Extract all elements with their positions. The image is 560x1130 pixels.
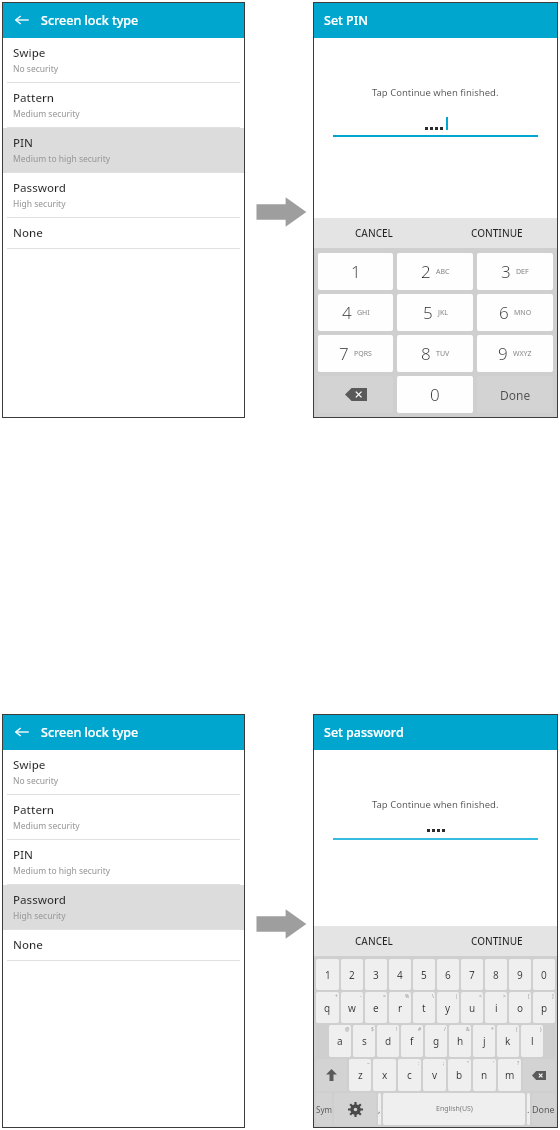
button[interactable]: e	[365, 992, 387, 1023]
staticText: 7	[339, 342, 349, 365]
staticText: GHI	[357, 308, 370, 318]
button[interactable]: y	[437, 992, 459, 1023]
button[interactable]: a	[329, 1025, 351, 1057]
button[interactable]: q	[316, 992, 339, 1023]
staticText: 6	[499, 301, 509, 324]
button[interactable]: CONTINUE	[435, 926, 558, 956]
button[interactable]: Back	[11, 721, 33, 743]
button[interactable]: m	[498, 1059, 521, 1091]
button[interactable]: CONTINUE	[435, 218, 558, 248]
button[interactable]: j	[473, 1025, 495, 1057]
button[interactable]: Pattern	[2, 83, 245, 128]
button[interactable]: 8	[485, 959, 507, 990]
button[interactable]: 6	[477, 294, 553, 331]
button[interactable]: c	[398, 1059, 421, 1091]
button[interactable]: b	[448, 1059, 471, 1091]
button[interactable]: Delete	[318, 376, 393, 413]
button[interactable]: s	[353, 1025, 375, 1057]
button[interactable]: 4	[389, 959, 411, 990]
button[interactable]: x	[373, 1059, 396, 1091]
button[interactable]: z	[349, 1059, 371, 1091]
staticText: %	[405, 993, 410, 1000]
button[interactable]: f	[401, 1025, 423, 1057]
button[interactable]: u	[461, 992, 483, 1023]
button[interactable]: t	[413, 992, 435, 1023]
button[interactable]: 7	[461, 959, 483, 990]
button[interactable]: 0	[397, 376, 473, 413]
staticText: !	[396, 1026, 398, 1033]
button[interactable]: Done	[477, 376, 553, 413]
staticText: 8	[421, 342, 431, 365]
button[interactable]: None	[2, 218, 245, 249]
button[interactable]: r	[389, 992, 411, 1023]
staticText: m	[505, 1068, 515, 1082]
staticText: 7	[469, 968, 475, 982]
button[interactable]: Password	[2, 885, 245, 930]
staticText: +	[335, 993, 338, 1000]
button[interactable]: Shift	[316, 1059, 347, 1091]
staticText: )	[540, 1026, 542, 1033]
button[interactable]: .	[527, 1093, 530, 1125]
button[interactable]: 2	[341, 959, 363, 990]
button[interactable]: o	[509, 992, 531, 1023]
button[interactable]: English(US)	[383, 1093, 525, 1125]
button[interactable]: d	[377, 1025, 399, 1057]
button[interactable]: Swipe	[2, 38, 245, 83]
staticText: g	[433, 1034, 440, 1048]
button[interactable]: 9	[509, 959, 531, 990]
staticText: .	[527, 1103, 530, 1115]
staticText: Set password	[324, 724, 404, 741]
button[interactable]: l	[521, 1025, 543, 1057]
staticText: 1	[351, 260, 361, 283]
button[interactable]: Pattern	[2, 795, 245, 840]
button[interactable]: 1	[318, 253, 393, 290]
staticText: Pattern	[13, 802, 55, 818]
button[interactable]: 3	[365, 959, 387, 990]
staticText: $	[371, 1026, 374, 1033]
button[interactable]: p	[533, 992, 555, 1023]
button[interactable]: Done	[532, 1093, 555, 1125]
button[interactable]: 7	[318, 335, 393, 372]
staticText: CANCEL	[355, 934, 393, 948]
button[interactable]: None	[2, 930, 245, 961]
button[interactable]: 3	[477, 253, 553, 290]
staticText: @	[345, 1026, 350, 1033]
staticText: Tap Continue when finished.	[372, 798, 499, 811]
button[interactable]: Delete	[523, 1059, 555, 1091]
staticText: x	[382, 1068, 388, 1082]
staticText: 9	[498, 342, 508, 365]
button[interactable]: 8	[397, 335, 473, 372]
button[interactable]: Sym	[316, 1093, 332, 1125]
button[interactable]: 6	[437, 959, 459, 990]
button[interactable]: k	[497, 1025, 519, 1057]
button[interactable]: 2	[397, 253, 473, 290]
button[interactable]: 1	[316, 959, 339, 990]
button[interactable]: PIN	[2, 840, 245, 885]
button[interactable]: 5	[397, 294, 473, 331]
button[interactable]: w	[341, 992, 363, 1023]
button[interactable]: i	[485, 992, 507, 1023]
button[interactable]: ,	[378, 1093, 381, 1125]
button[interactable]: CANCEL	[313, 926, 435, 956]
button[interactable]: Back	[11, 9, 33, 31]
button[interactable]: Password	[2, 173, 245, 218]
button[interactable]: 4	[318, 294, 393, 331]
button[interactable]: h	[449, 1025, 471, 1057]
button[interactable]: Swipe	[2, 750, 245, 795]
staticText: t	[422, 1001, 426, 1015]
staticText: ABC	[436, 267, 450, 277]
button[interactable]: 5	[413, 959, 435, 990]
staticText: High security	[13, 910, 66, 922]
button[interactable]: g	[425, 1025, 447, 1057]
button[interactable]: 9	[477, 335, 553, 372]
button[interactable]: Settings	[334, 1093, 376, 1125]
button[interactable]: 0	[533, 959, 555, 990]
button[interactable]: n	[473, 1059, 496, 1091]
staticText: 2	[421, 260, 431, 283]
button[interactable]: CANCEL	[313, 218, 435, 248]
button[interactable]: PIN	[2, 128, 245, 173]
staticText: ?	[517, 1060, 520, 1067]
staticText: None	[13, 937, 43, 953]
button[interactable]: v	[423, 1059, 446, 1091]
staticText: Medium security	[13, 108, 80, 120]
